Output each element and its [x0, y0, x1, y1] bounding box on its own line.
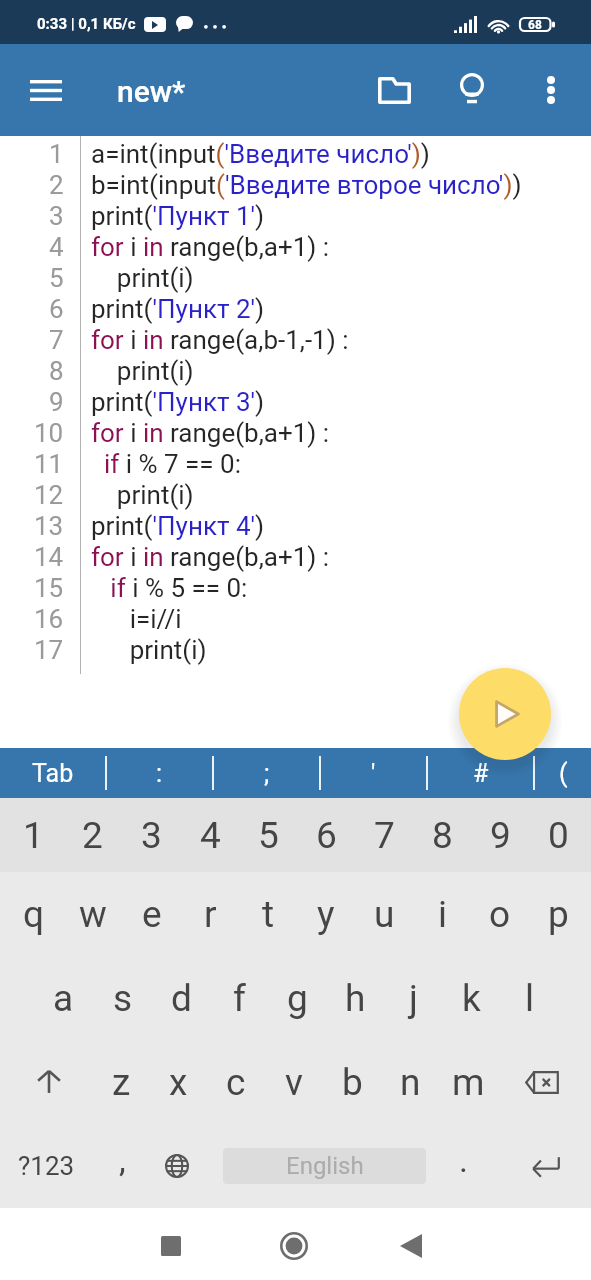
button[interactable]: English	[223, 1148, 426, 1184]
staticText: 2	[82, 814, 103, 857]
button[interactable]: p	[529, 872, 587, 956]
staticText: 9	[490, 814, 511, 857]
staticText: b=int(input('Введите второе число'))	[91, 170, 522, 200]
staticText: 68	[528, 18, 542, 32]
button[interactable]: :	[107, 748, 212, 798]
button[interactable]: a	[34, 956, 93, 1040]
button[interactable]: .	[426, 1124, 501, 1208]
button[interactable]: g	[268, 956, 326, 1040]
button[interactable]: Shift	[4, 1040, 93, 1124]
staticText: r	[204, 893, 217, 936]
staticText: 8	[432, 814, 453, 857]
staticText: (	[559, 759, 568, 788]
button[interactable]: i	[413, 872, 471, 956]
button[interactable]: e	[122, 872, 181, 956]
button[interactable]: 8	[413, 798, 471, 872]
staticText: k	[462, 977, 481, 1020]
button[interactable]: d	[152, 956, 210, 1040]
staticText: ;	[264, 759, 270, 788]
button[interactable]: Change language	[152, 1124, 202, 1208]
button[interactable]: x	[150, 1040, 207, 1124]
button[interactable]: y	[297, 872, 355, 956]
button[interactable]: j	[384, 956, 442, 1040]
button[interactable]: u	[355, 872, 413, 956]
button[interactable]: Tab	[0, 748, 105, 798]
button[interactable]: Backspace	[497, 1040, 587, 1124]
button[interactable]: 7	[355, 798, 413, 872]
button[interactable]: Menu	[13, 57, 79, 123]
staticText: print('Пункт 3')	[91, 387, 265, 417]
button[interactable]: Back	[378, 1213, 444, 1279]
staticText: 5	[258, 814, 279, 857]
staticText: 4	[200, 814, 221, 857]
button[interactable]: ,	[92, 1124, 152, 1208]
button[interactable]: Run	[459, 668, 551, 760]
button[interactable]: 2	[63, 798, 122, 872]
staticText: #	[473, 759, 489, 788]
button[interactable]: t	[239, 872, 297, 956]
staticText: v	[285, 1061, 303, 1104]
button[interactable]: 6	[297, 798, 355, 872]
button[interactable]: c	[207, 1040, 265, 1124]
button[interactable]: 4	[181, 798, 239, 872]
staticText: w	[79, 893, 107, 936]
staticText: x	[169, 1061, 188, 1104]
staticText: n	[400, 1061, 421, 1104]
staticText: 7	[374, 814, 395, 857]
staticText: d	[171, 977, 192, 1020]
staticText: 9	[49, 387, 64, 417]
staticText: 10	[34, 418, 64, 448]
staticText: u	[374, 893, 395, 936]
staticText: q	[23, 893, 45, 936]
button[interactable]: r	[181, 872, 239, 956]
button[interactable]: Recent apps	[138, 1213, 204, 1279]
button[interactable]: h	[326, 956, 384, 1040]
button[interactable]: w	[63, 872, 122, 956]
button[interactable]: s	[93, 956, 152, 1040]
staticText: g	[287, 977, 308, 1020]
staticText: 14	[34, 542, 64, 572]
button[interactable]: (	[535, 748, 591, 798]
button[interactable]: q	[4, 872, 63, 956]
staticText: 3	[49, 201, 64, 231]
button[interactable]: Open file	[361, 57, 427, 123]
staticText: z	[112, 1061, 131, 1104]
button[interactable]: v	[265, 1040, 323, 1124]
staticText: a=int(input('Введите число'))	[91, 139, 430, 169]
staticText: print('Пункт 2')	[91, 294, 265, 324]
staticText: h	[345, 977, 366, 1020]
button[interactable]: l	[500, 956, 558, 1040]
button[interactable]: 3	[122, 798, 181, 872]
button[interactable]: More options	[518, 57, 584, 123]
button[interactable]: 5	[239, 798, 297, 872]
button[interactable]: 9	[471, 798, 529, 872]
staticText: print(i)	[91, 263, 194, 293]
staticText: 1	[49, 139, 64, 169]
button[interactable]: ?123	[0, 1124, 92, 1208]
button[interactable]: z	[93, 1040, 150, 1124]
staticText: b	[342, 1061, 363, 1104]
button[interactable]: 0	[529, 798, 587, 872]
button[interactable]: k	[442, 956, 500, 1040]
staticText: y	[317, 893, 335, 936]
button[interactable]: 1	[4, 798, 63, 872]
staticText: 2	[49, 170, 64, 200]
button[interactable]: #	[428, 748, 533, 798]
staticText: Tab	[32, 759, 74, 788]
button[interactable]: Enter	[501, 1124, 591, 1208]
staticText: print(i)	[91, 356, 194, 386]
staticText: '	[371, 759, 376, 788]
button[interactable]: Hints	[439, 57, 505, 123]
button[interactable]: ;	[214, 748, 319, 798]
button[interactable]: m	[439, 1040, 497, 1124]
staticText: :	[156, 759, 163, 788]
button[interactable]: n	[381, 1040, 439, 1124]
staticText: 4	[49, 232, 64, 262]
button[interactable]: o	[471, 872, 529, 956]
button[interactable]: b	[323, 1040, 381, 1124]
staticText: 3	[141, 814, 162, 857]
button[interactable]: '	[321, 748, 426, 798]
button[interactable]: Home	[261, 1213, 327, 1279]
button[interactable]: f	[210, 956, 268, 1040]
staticText: if i % 7 == 0:	[91, 449, 241, 479]
